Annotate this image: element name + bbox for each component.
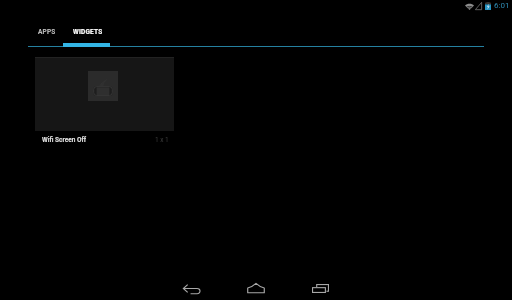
staticText: WIDGETS — [73, 28, 103, 36]
button[interactable]: Back — [175, 260, 209, 300]
button[interactable]: Home — [239, 260, 273, 300]
button[interactable]: Wifi Screen Off — [35, 57, 174, 148]
button[interactable]: APPS — [28, 22, 65, 46]
button[interactable]: WIDGETS — [65, 22, 111, 46]
button[interactable]: Recent apps — [303, 260, 337, 300]
staticText: Wifi Screen Off — [42, 136, 87, 144]
staticText: 6:01 — [494, 1, 510, 10]
staticText: APPS — [38, 28, 56, 36]
staticText: 1 x 1 — [155, 136, 169, 144]
